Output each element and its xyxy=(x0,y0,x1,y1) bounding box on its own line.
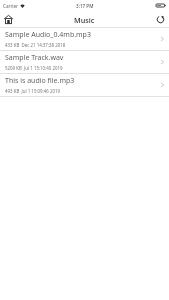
staticText: 433 KB Dec 21 14:37:38 2018 xyxy=(5,42,66,48)
staticText: Carrier xyxy=(3,3,18,9)
button[interactable]: Refresh xyxy=(152,11,169,28)
staticText: Sample Audio_0.4mb.mp3 xyxy=(5,30,91,40)
staticText: Sample Track.wav xyxy=(5,53,64,63)
staticText: 5209 KB Jul 1 15:10:40 2019 xyxy=(5,65,63,71)
staticText: 3:17 PM xyxy=(76,3,94,9)
button[interactable]: Sample Track.wav xyxy=(0,51,169,73)
button[interactable]: This is audio file.mp3 xyxy=(0,74,169,96)
button[interactable]: Home xyxy=(0,11,17,28)
staticText: This is audio file.mp3 xyxy=(5,76,75,86)
staticText: Music xyxy=(74,15,95,25)
button[interactable]: Sample Audio_0.4mb.mp3 xyxy=(0,28,169,50)
staticText: 493 KB Jul 1 15:09:46 2019 xyxy=(5,88,60,94)
